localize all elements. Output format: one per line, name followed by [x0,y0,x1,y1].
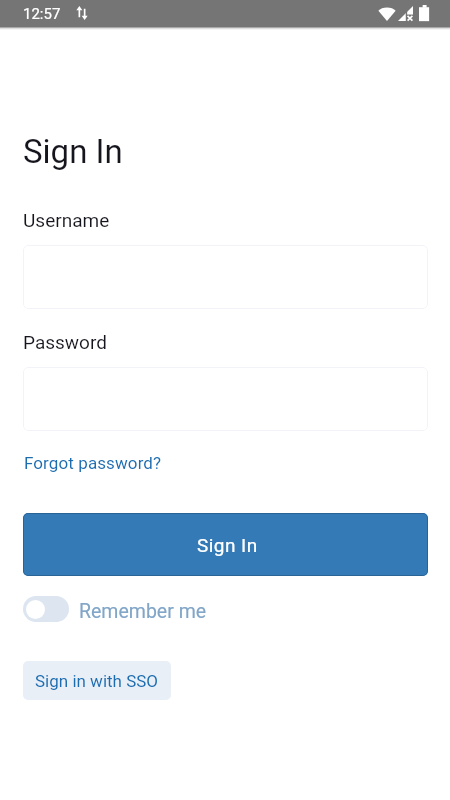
staticText: Sign In [23,132,123,171]
button[interactable]: Remember me [23,596,207,622]
button[interactable]: Forgot password? [23,451,161,475]
staticText: Sign In [197,534,258,556]
staticText: Username [23,209,110,231]
staticText: Sign in with SSO [35,671,159,691]
staticText: Remember me [79,600,207,623]
button[interactable]: Sign In [23,513,428,576]
staticText: Forgot password? [24,453,162,473]
button[interactable]: Sign in with SSO [23,661,171,700]
staticText: 12:57 [23,5,61,23]
staticText: Password [23,331,107,353]
